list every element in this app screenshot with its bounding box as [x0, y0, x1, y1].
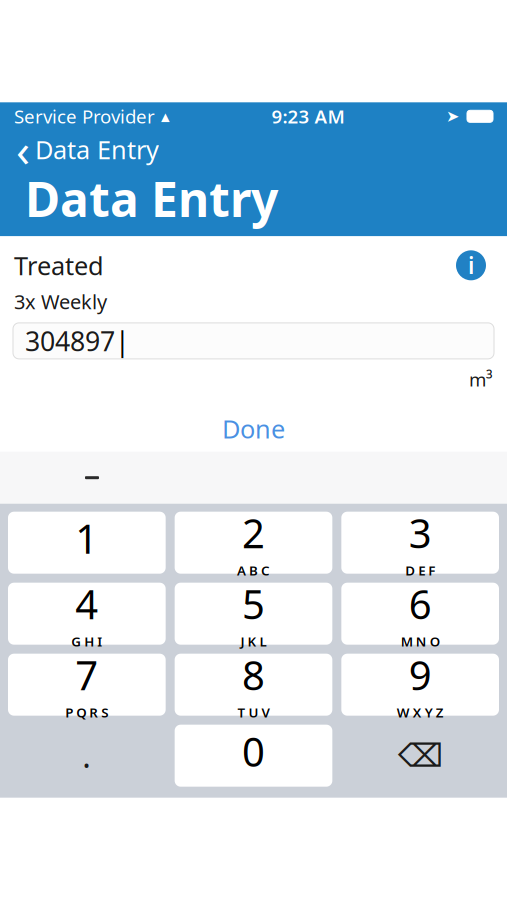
- staticText: ‹: [16, 119, 30, 179]
- staticText: 3: [409, 506, 432, 559]
- staticText: Treated: [14, 248, 104, 282]
- button[interactable]: 7: [8, 654, 166, 716]
- button[interactable]: Decimal point: [8, 725, 166, 787]
- staticText: 3x Weekly: [14, 288, 107, 315]
- staticText: 5: [242, 577, 265, 630]
- staticText: M N O: [401, 632, 440, 650]
- button[interactable]: 4: [8, 583, 166, 645]
- button[interactable]: 8: [175, 654, 332, 716]
- staticText: m³: [469, 367, 493, 392]
- staticText: Data Entry: [35, 132, 159, 166]
- staticText: T U V: [237, 703, 269, 721]
- staticText: 0: [242, 725, 265, 778]
- staticText: J K L: [240, 632, 266, 650]
- staticText: Data Entry: [25, 166, 278, 230]
- staticText: 8: [242, 648, 265, 701]
- button[interactable]: 5: [175, 583, 332, 645]
- button[interactable]: ‹: [0, 131, 175, 167]
- staticText: 304897: [25, 323, 115, 359]
- button[interactable]: 9: [341, 654, 499, 716]
- staticText: D E F: [405, 561, 435, 579]
- staticText: 2: [242, 506, 265, 559]
- staticText: 9:23 AM: [271, 104, 344, 129]
- button[interactable]: 0: [175, 725, 332, 787]
- button[interactable]: 1: [8, 512, 166, 574]
- staticText: W X Y Z: [397, 703, 444, 721]
- staticText: 7: [75, 648, 98, 701]
- button[interactable]: 3: [341, 512, 499, 574]
- staticText: ⌫: [398, 737, 443, 774]
- staticText: P Q R S: [65, 703, 108, 721]
- staticText: ▴: [161, 106, 170, 126]
- staticText: 6: [409, 577, 432, 630]
- staticText: Service Provider: [14, 104, 155, 129]
- staticText: 1: [75, 512, 98, 565]
- button[interactable]: Delete: [341, 725, 499, 787]
- staticText: 9: [409, 648, 432, 701]
- button[interactable]: 304897: [13, 323, 494, 359]
- staticText: |: [115, 323, 130, 359]
- button[interactable]: Information: [449, 243, 493, 287]
- staticText: i: [468, 250, 474, 280]
- button[interactable]: Done: [0, 414, 507, 444]
- staticText: 4: [75, 577, 98, 630]
- button[interactable]: 2: [175, 512, 332, 574]
- staticText: G H I: [71, 632, 102, 650]
- button[interactable]: Minus: [72, 458, 112, 498]
- button[interactable]: 6: [341, 583, 499, 645]
- staticText: .: [82, 734, 91, 777]
- staticText: A B C: [237, 561, 270, 579]
- staticText: ➤: [446, 107, 459, 125]
- staticText: Done: [222, 412, 285, 445]
